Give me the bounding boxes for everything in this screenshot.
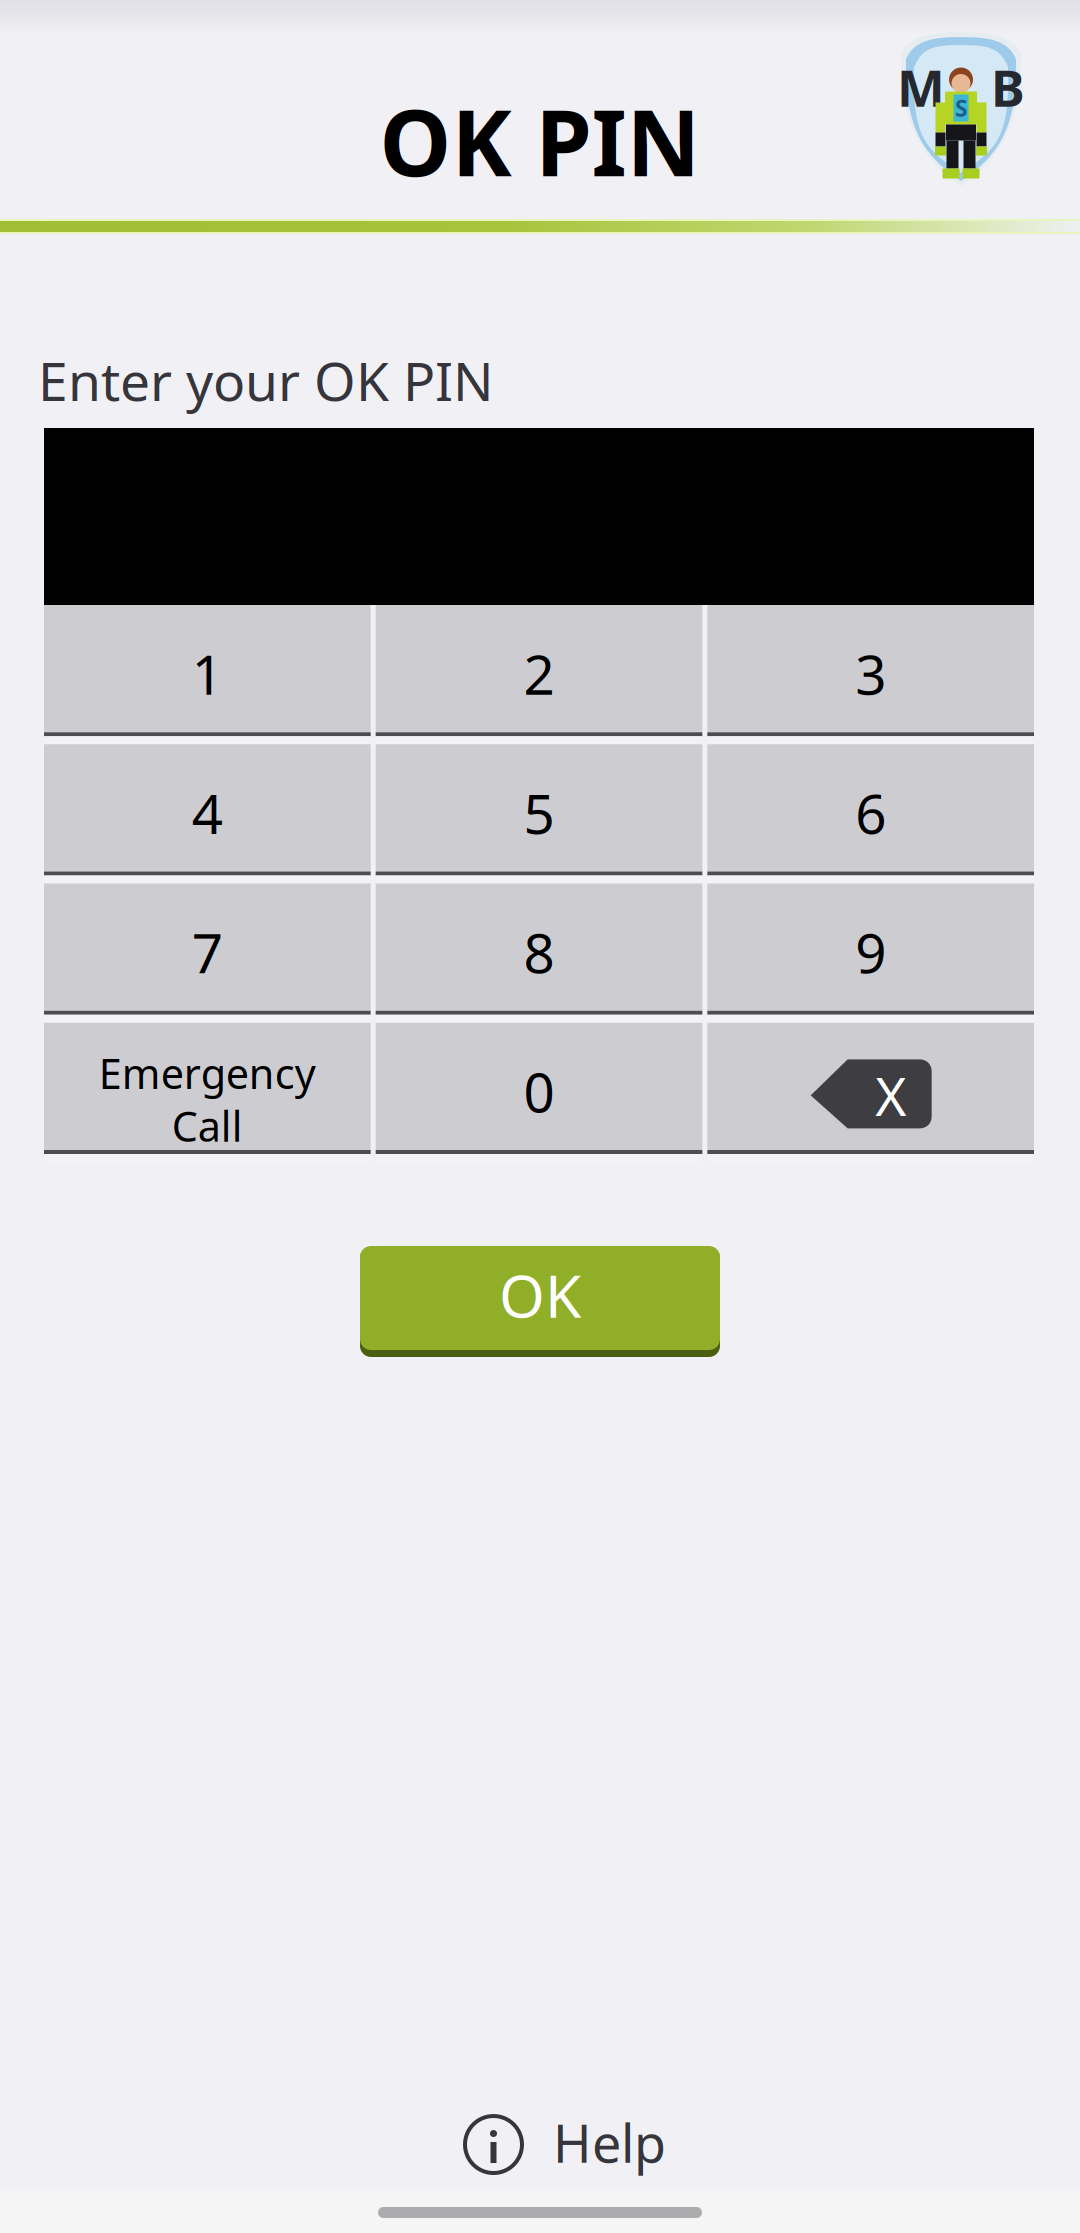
staticText: Enter your OK PIN (38, 345, 494, 416)
button[interactable]: 7 (44, 883, 371, 1023)
staticText: 2 (523, 637, 554, 710)
staticText: S (955, 93, 967, 123)
staticText: 7 (192, 916, 223, 988)
staticText: M (897, 53, 945, 121)
staticText: 3 (855, 637, 886, 710)
staticText: 5 (523, 777, 554, 849)
staticText: 4 (192, 777, 223, 849)
button[interactable]: 6 (707, 744, 1034, 883)
staticText: OK (499, 1256, 581, 1334)
button[interactable]: OK (360, 1241, 720, 1355)
staticText: 9 (855, 916, 886, 988)
button[interactable]: 9 (707, 883, 1034, 1023)
staticText: Emergency (99, 1045, 316, 1100)
button[interactable]: Help (447, 2094, 684, 2195)
button[interactable]: Emergency (44, 1023, 371, 1162)
button[interactable]: 8 (376, 883, 702, 1023)
staticText: 8 (523, 916, 554, 988)
staticText: 6 (855, 777, 886, 849)
staticText: B (991, 53, 1025, 121)
button[interactable]: Backspace (707, 1023, 1034, 1162)
staticText: Help (553, 2108, 666, 2177)
button[interactable]: 0 (376, 1023, 702, 1162)
staticText: Call (172, 1098, 243, 1153)
button[interactable]: 4 (44, 744, 371, 883)
button[interactable]: 5 (376, 744, 702, 883)
staticText: 1 (192, 637, 223, 710)
button[interactable]: 1 (44, 605, 371, 744)
staticText: X (875, 1060, 906, 1131)
button[interactable]: 3 (707, 605, 1034, 744)
staticText: 0 (523, 1055, 554, 1128)
button[interactable]: 2 (376, 605, 702, 744)
staticText: OK PIN (379, 81, 700, 201)
